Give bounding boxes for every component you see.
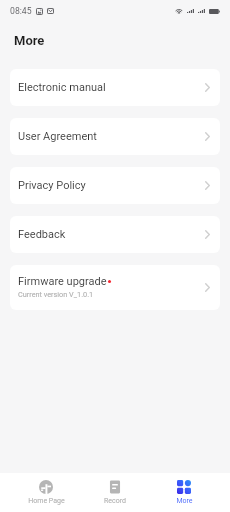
button[interactable]: Privacy Policy: [10, 167, 220, 204]
button[interactable]: More: [150, 473, 218, 512]
staticText: Feedback: [18, 228, 66, 241]
staticText: Record: [104, 497, 126, 505]
staticText: 08:45: [10, 6, 32, 16]
button[interactable]: Record: [81, 473, 149, 512]
staticText: Electronic manual: [18, 81, 106, 94]
staticText: Home Page: [28, 497, 65, 505]
button[interactable]: Home Page: [12, 473, 80, 512]
staticText: Privacy Policy: [18, 179, 86, 192]
button[interactable]: Firmware upgrade: [10, 265, 220, 310]
staticText: Current version V_1.0.1: [18, 290, 94, 299]
staticText: Firmware upgrade: [18, 275, 107, 288]
button[interactable]: Electronic manual: [10, 69, 220, 106]
staticText: More: [14, 33, 45, 48]
staticText: User Agreement: [18, 130, 97, 143]
button[interactable]: User Agreement: [10, 118, 220, 155]
button[interactable]: Feedback: [10, 216, 220, 253]
staticText: More: [176, 497, 193, 505]
